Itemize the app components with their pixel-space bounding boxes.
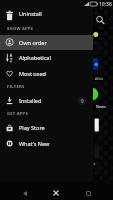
button[interactable]: Uninstall — [0, 0, 93, 22]
staticText: News — [96, 104, 106, 109]
button[interactable]: Recent apps — [78, 182, 98, 200]
staticText: SHOW APPS — [7, 26, 34, 32]
staticText: Alphabetical — [19, 54, 51, 61]
staticText: 10:36 — [99, 1, 112, 8]
staticText: Installed — [19, 97, 42, 104]
button[interactable]: Most used — [0, 66, 93, 81]
staticText: Uninstall — [19, 10, 42, 17]
staticText: Own order — [19, 39, 47, 46]
staticText: Play Store — [19, 124, 45, 131]
button[interactable]: Back — [15, 182, 35, 200]
staticText: FILTERS — [7, 84, 25, 90]
button[interactable]: Play Store — [0, 120, 93, 135]
staticText: GET APPS — [7, 111, 28, 117]
button[interactable]: Alphabetical — [0, 50, 93, 65]
button[interactable]: What's New — [0, 136, 93, 151]
button[interactable]: Close — [46, 182, 66, 200]
button[interactable]: Installed — [0, 93, 93, 108]
staticText: Atlas — [95, 76, 104, 81]
staticText: What's New — [19, 140, 50, 147]
staticText: 9 — [81, 98, 84, 104]
button[interactable]: Own order — [0, 35, 93, 50]
staticText: Most used — [19, 70, 46, 77]
